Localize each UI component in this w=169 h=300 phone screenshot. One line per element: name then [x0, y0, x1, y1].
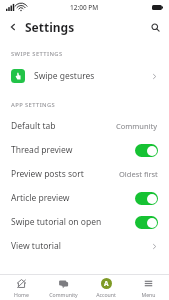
staticText: Home — [14, 291, 29, 298]
staticText: Menu — [141, 291, 156, 298]
staticText: Oldest first — [119, 169, 158, 179]
button[interactable] — [135, 144, 158, 157]
staticText: SWIPE SETTINGS — [11, 50, 63, 58]
staticText: Article preview — [11, 192, 135, 204]
staticText: Preview posts sort — [11, 168, 119, 180]
button[interactable]: Article preview — [0, 186, 169, 210]
staticText: Default tab — [11, 120, 116, 132]
button[interactable]: A — [85, 275, 127, 300]
button[interactable] — [135, 192, 158, 205]
staticText: A — [104, 279, 109, 288]
staticText: View tutorial — [11, 240, 151, 252]
button[interactable]: Search — [145, 17, 165, 37]
staticText: Swipe gestures — [34, 70, 151, 82]
button[interactable] — [135, 216, 158, 229]
staticText: Settings — [25, 19, 75, 35]
button[interactable]: Menu — [127, 275, 169, 300]
staticText: Thread preview — [11, 144, 135, 156]
button[interactable]: Swipe gestures — [0, 63, 169, 89]
staticText: Community — [49, 291, 78, 298]
staticText: Community — [116, 121, 158, 131]
button[interactable]: View tutorial — [0, 234, 169, 258]
staticText: Swipe tutorial on open — [11, 216, 135, 228]
button[interactable]: Default tab — [0, 114, 169, 138]
staticText: Account — [96, 291, 116, 298]
button[interactable]: Preview posts sort — [0, 162, 169, 186]
button[interactable]: Thread preview — [0, 138, 169, 162]
button[interactable]: Community — [42, 275, 84, 300]
button[interactable]: Swipe tutorial on open — [0, 210, 169, 234]
button[interactable]: Home — [0, 275, 42, 300]
staticText: 12:00 PM — [70, 3, 99, 12]
staticText: APP SETTINGS — [11, 101, 56, 109]
button[interactable]: Back — [3, 17, 23, 37]
